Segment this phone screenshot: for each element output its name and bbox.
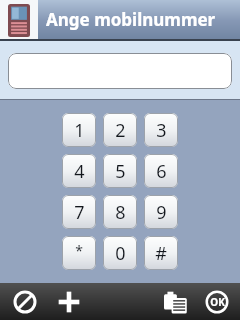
other: Mobile phone [0,0,38,41]
staticText: 1 [74,118,85,143]
button[interactable]: 7 [62,195,96,229]
staticText: 9 [156,200,167,225]
staticText: # [155,241,167,266]
button[interactable]: 3 [144,113,178,147]
button[interactable]: 4 [62,154,96,188]
staticText: 4 [74,159,85,184]
button[interactable]: Add [51,284,87,320]
staticText: 7 [74,200,85,225]
button[interactable]: 9 [144,195,178,229]
staticText: 2 [115,118,126,143]
button[interactable]: 6 [144,154,178,188]
button[interactable]: 1 [62,113,96,147]
button[interactable]: 0 [103,236,137,270]
button[interactable]: Phone number input [8,53,232,89]
staticText: 5 [115,159,126,184]
button[interactable]: 2 [103,113,137,147]
staticText: 6 [156,159,167,184]
button[interactable]: OK [199,284,235,320]
staticText: 8 [115,200,126,225]
staticText: Ange mobilnummer [46,8,216,31]
button[interactable]: Paste [157,284,193,320]
button[interactable]: # [144,236,178,270]
button[interactable]: 8 [103,195,137,229]
staticText: * [75,241,83,260]
staticText: 0 [115,241,126,266]
staticText: OK [210,295,225,309]
button[interactable]: 5 [103,154,137,188]
staticText: 3 [156,118,167,143]
button[interactable]: * [62,236,96,270]
button[interactable]: Cancel [7,284,43,320]
